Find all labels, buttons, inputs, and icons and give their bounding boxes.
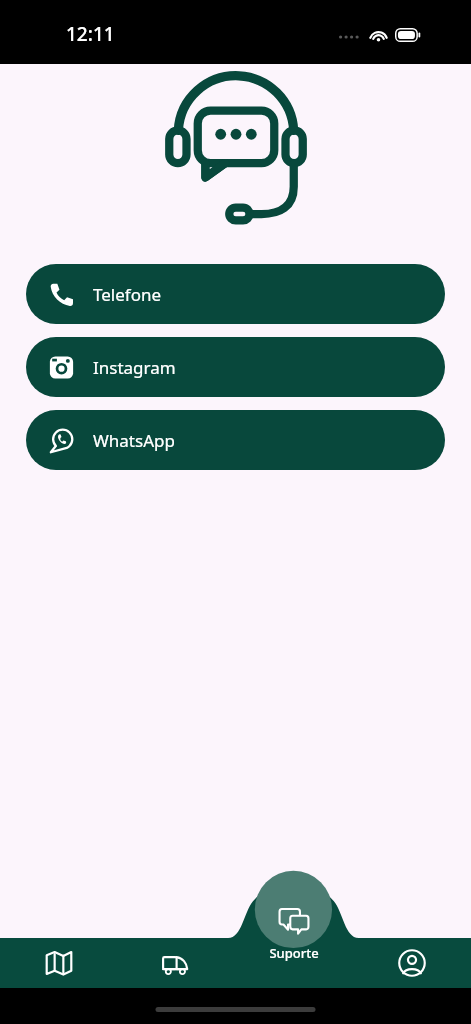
staticText: Instagram — [93, 356, 176, 379]
button[interactable]: Perfil — [353, 938, 471, 988]
button[interactable]: Telefone — [26, 264, 445, 324]
button[interactable]: WhatsApp — [26, 410, 445, 470]
button[interactable]: Mapa — [0, 938, 117, 988]
button[interactable]: Suporte — [246, 936, 342, 988]
staticText: WhatsApp — [93, 429, 175, 452]
button[interactable]: Instagram — [26, 337, 445, 397]
button[interactable]: Entregas — [117, 938, 235, 988]
staticText: Telefone — [93, 283, 162, 306]
staticText: 12:11 — [66, 21, 115, 47]
staticText: Suporte — [269, 944, 319, 962]
